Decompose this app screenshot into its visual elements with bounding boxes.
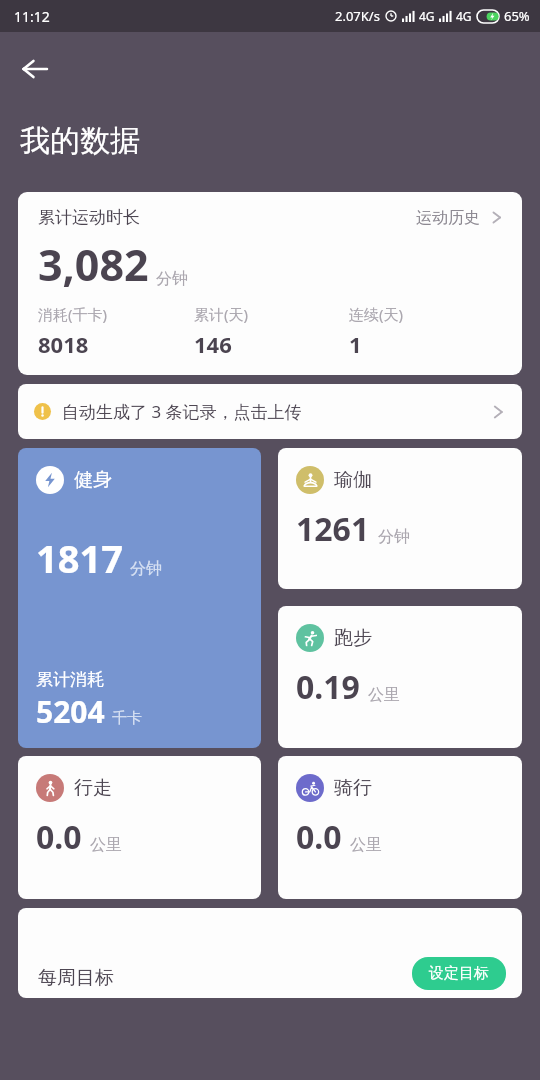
staticText: 1261	[296, 507, 370, 551]
staticText: 1	[349, 329, 362, 359]
staticText: 累计消耗	[36, 669, 104, 690]
staticText: 公里	[90, 835, 122, 855]
staticText: 我的数据	[20, 122, 140, 160]
staticText: 设定目标	[429, 964, 489, 983]
staticText: 4G	[456, 8, 472, 24]
staticText: 公里	[350, 835, 382, 855]
button[interactable]: 每周目标	[18, 908, 522, 998]
staticText: 0.0	[296, 815, 342, 859]
button[interactable]: 自动生成了 3 条记录，点击上传	[18, 384, 522, 439]
staticText: 分钟	[156, 269, 188, 289]
staticText: 累计(天)	[194, 304, 249, 324]
staticText: 1817	[36, 532, 123, 584]
staticText: 0.19	[296, 665, 360, 709]
button[interactable]: Back	[8, 42, 62, 96]
button[interactable]: 骑行	[278, 756, 522, 899]
staticText: 5204	[36, 691, 105, 732]
staticText: 瑜伽	[334, 468, 372, 492]
staticText: 连续(天)	[349, 304, 404, 324]
staticText: 公里	[368, 685, 400, 705]
staticText: 自动生成了 3 条记录，点击上传	[62, 400, 302, 423]
staticText: 累计运动时长	[38, 207, 140, 228]
button[interactable]: 行走	[18, 756, 261, 899]
button[interactable]: 健身	[18, 448, 261, 748]
staticText: 146	[194, 329, 232, 359]
button[interactable]: 瑜伽	[278, 448, 522, 589]
staticText: 65%	[504, 7, 530, 25]
staticText: 8018	[38, 329, 89, 359]
staticText: 分钟	[130, 559, 162, 579]
staticText: 每周目标	[38, 966, 114, 990]
staticText: 健身	[74, 468, 112, 492]
staticText: 消耗(千卡)	[38, 304, 108, 324]
staticText: 行走	[74, 776, 112, 800]
button[interactable]: 跑步	[278, 606, 522, 748]
staticText: 跑步	[334, 626, 372, 650]
staticText: 4G	[419, 8, 435, 24]
staticText: 0.0	[36, 815, 82, 859]
staticText: 骑行	[334, 776, 372, 800]
staticText: 运动历史	[416, 208, 480, 228]
staticText: 11:12	[14, 7, 50, 26]
staticText: 千卡	[112, 709, 142, 728]
staticText: 3,082	[38, 235, 149, 294]
button[interactable]: 累计运动时长	[18, 192, 522, 375]
button[interactable]: 设定目标	[412, 957, 506, 990]
staticText: 分钟	[378, 527, 410, 547]
staticText: 2.07K/s	[335, 7, 380, 25]
